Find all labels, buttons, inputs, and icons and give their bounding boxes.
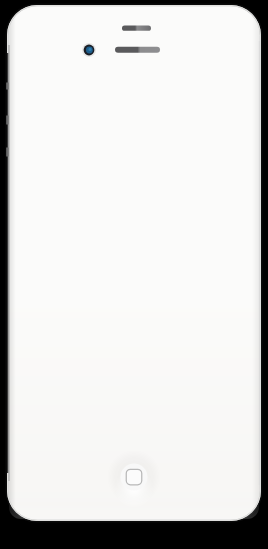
button[interactable]: Home button (116, 459, 152, 495)
